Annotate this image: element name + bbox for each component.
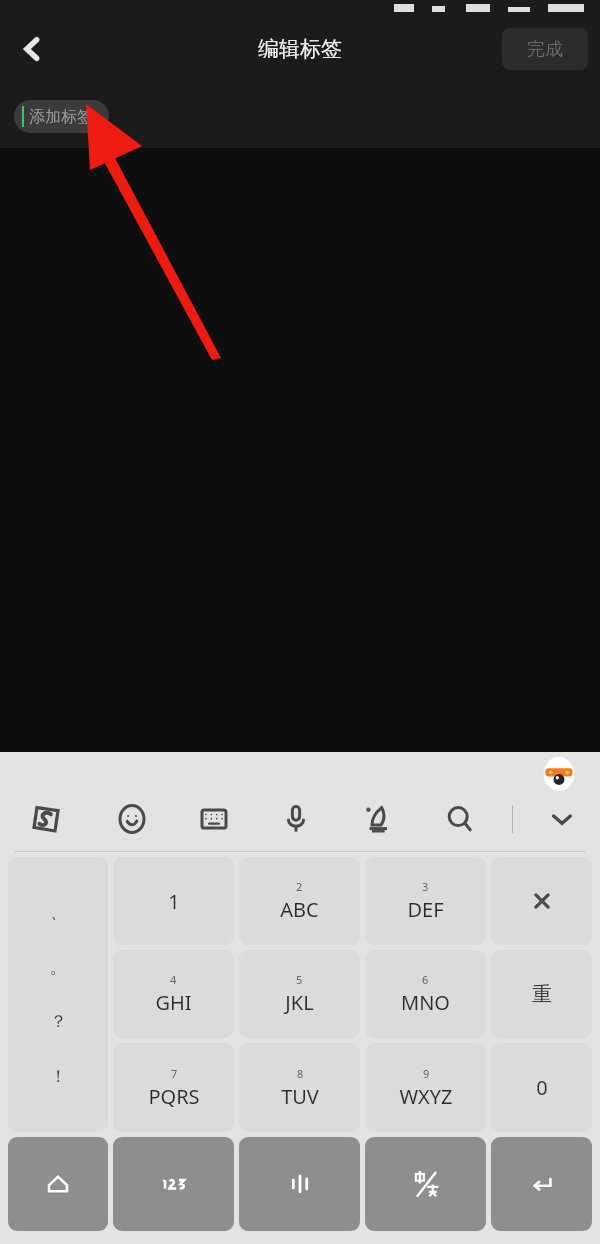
button[interactable]: 4	[113, 950, 234, 1038]
staticText: MNO	[401, 989, 450, 1016]
staticText: 。	[50, 957, 67, 978]
staticText: ABC	[280, 896, 319, 923]
button[interactable]: 重	[491, 950, 592, 1038]
button[interactable]: 5	[239, 950, 360, 1038]
button[interactable]: Emoji	[91, 788, 173, 850]
staticText: 完成	[527, 38, 563, 61]
button[interactable]: Search	[419, 788, 501, 850]
staticText: 9	[423, 1066, 430, 1081]
button[interactable]: 9	[365, 1043, 486, 1132]
button[interactable]: Back	[0, 17, 64, 81]
staticText: GHI	[155, 989, 192, 1016]
staticText: ？	[50, 1011, 67, 1032]
staticText: 1	[168, 888, 180, 915]
button[interactable]: Voice input	[255, 788, 337, 850]
staticText: 3	[422, 879, 429, 894]
staticText: ！	[50, 1066, 67, 1087]
staticText: TUV	[281, 1083, 319, 1110]
button[interactable]: Number keypad	[113, 1137, 234, 1231]
button[interactable]: 1	[113, 857, 234, 945]
staticText: 8	[297, 1066, 304, 1081]
staticText: 重	[532, 982, 552, 1007]
staticText: 6	[422, 972, 429, 987]
staticText: WXYZ	[399, 1083, 453, 1110]
button[interactable]: 6	[365, 950, 486, 1038]
button[interactable]: 添加标签	[14, 100, 109, 133]
staticText: 添加标签	[29, 107, 93, 127]
staticText: 7	[171, 1066, 178, 1081]
button[interactable]: Chinese English toggle	[365, 1137, 486, 1231]
button[interactable]: Enter	[491, 1137, 592, 1231]
button[interactable]: 7	[113, 1043, 234, 1132]
staticText: JKL	[285, 989, 314, 1016]
button[interactable]: 0	[491, 1043, 592, 1132]
staticText: DEF	[407, 896, 444, 923]
button[interactable]: 2	[239, 857, 360, 945]
button[interactable]: Handwriting	[337, 788, 419, 850]
staticText: 、	[50, 902, 67, 923]
button[interactable]: Hide keyboard	[524, 788, 600, 850]
button[interactable]: 完成	[502, 28, 588, 70]
button[interactable]: 、	[8, 857, 108, 1132]
button[interactable]: 8	[239, 1043, 360, 1132]
staticText: 4	[170, 972, 177, 987]
button[interactable]: Sogou input method	[0, 788, 91, 850]
staticText: PQRS	[148, 1083, 200, 1110]
button[interactable]: 3	[365, 857, 486, 945]
staticText: 0	[536, 1074, 548, 1101]
staticText: 2	[296, 879, 303, 894]
button[interactable]: Delete	[491, 857, 592, 945]
button[interactable]: Home	[8, 1137, 108, 1231]
staticText: 5	[296, 972, 303, 987]
button[interactable]: Keyboard layout	[173, 788, 255, 850]
button[interactable]: Space	[239, 1137, 360, 1231]
staticText: 编辑标签	[258, 36, 342, 62]
